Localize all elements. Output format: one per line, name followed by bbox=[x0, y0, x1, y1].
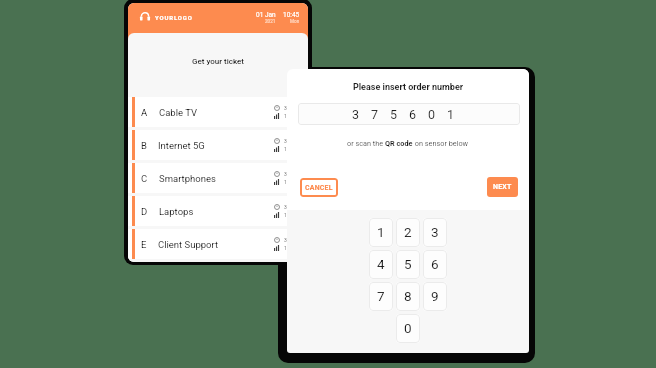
button[interactable]: 3 bbox=[423, 218, 447, 247]
staticText: A bbox=[141, 107, 148, 118]
button[interactable]: 0 bbox=[396, 314, 420, 343]
button[interactable]: E bbox=[128, 229, 308, 259]
staticText: D bbox=[141, 206, 148, 217]
button[interactable]: 9 bbox=[423, 282, 447, 311]
staticText: 4 bbox=[377, 256, 385, 272]
staticText: 5 bbox=[404, 256, 412, 272]
staticText: 1 bbox=[284, 212, 287, 218]
staticText: 3 bbox=[352, 107, 360, 122]
button[interactable]: B bbox=[128, 130, 308, 160]
staticText: 3 bbox=[284, 138, 287, 144]
staticText: 7 bbox=[377, 288, 385, 304]
staticText: 1 bbox=[284, 245, 287, 251]
button[interactable]: C bbox=[128, 163, 308, 193]
staticText: 5 bbox=[390, 107, 398, 122]
staticText: 3 bbox=[284, 204, 287, 210]
staticText: 9 bbox=[431, 288, 439, 304]
button[interactable]: 1 bbox=[369, 218, 393, 247]
staticText: 0 bbox=[404, 320, 412, 336]
staticText: YOURLOGO bbox=[155, 14, 193, 21]
staticText: 10:45 bbox=[283, 11, 300, 19]
staticText: Laptops bbox=[159, 206, 194, 217]
staticText: 3 bbox=[431, 224, 439, 240]
staticText: 3 bbox=[284, 237, 287, 243]
button[interactable]: 8 bbox=[396, 282, 420, 311]
staticText: 1 bbox=[284, 113, 287, 119]
staticText: 6 bbox=[409, 107, 417, 122]
staticText: 3 bbox=[284, 171, 287, 177]
staticText: Mon bbox=[290, 19, 300, 24]
button[interactable]: 2 bbox=[396, 218, 420, 247]
staticText: 1 bbox=[447, 107, 455, 122]
staticText: NEXT bbox=[493, 183, 512, 191]
staticText: 7 bbox=[371, 107, 379, 122]
staticText: B bbox=[141, 140, 147, 151]
staticText: Internet 5G bbox=[158, 140, 205, 151]
staticText: 0 bbox=[428, 107, 436, 122]
staticText: Client Support bbox=[158, 239, 219, 250]
button[interactable]: D bbox=[128, 196, 308, 226]
button[interactable]: 5 bbox=[396, 250, 420, 279]
staticText: 1 bbox=[284, 146, 287, 152]
staticText: 2021 bbox=[265, 19, 276, 24]
staticText: 2 bbox=[404, 224, 412, 240]
button[interactable]: 7 bbox=[369, 282, 393, 311]
staticText: 3 bbox=[284, 105, 287, 111]
button[interactable]: A bbox=[128, 97, 308, 127]
button[interactable]: 6 bbox=[423, 250, 447, 279]
staticText: Cable TV bbox=[159, 107, 197, 118]
staticText: CANCEL bbox=[305, 184, 333, 192]
button[interactable]: NEXT bbox=[487, 177, 518, 197]
staticText: 1 bbox=[377, 224, 385, 240]
button[interactable]: 4 bbox=[369, 250, 393, 279]
staticText: E bbox=[141, 239, 147, 250]
button[interactable]: 3 bbox=[298, 103, 520, 125]
other: Logo bbox=[140, 12, 150, 23]
staticText: Smartphones bbox=[159, 173, 216, 184]
staticText: 01 Jan bbox=[256, 11, 276, 19]
button[interactable]: CANCEL bbox=[300, 178, 338, 197]
staticText: on sensor below bbox=[413, 139, 469, 148]
staticText: 1 bbox=[284, 179, 287, 185]
staticText: QR code bbox=[385, 139, 413, 148]
staticText: Get your ticket bbox=[128, 57, 308, 66]
staticText: 8 bbox=[404, 288, 412, 304]
staticText: or scan the bbox=[347, 139, 385, 148]
staticText: 6 bbox=[431, 256, 439, 272]
staticText: C bbox=[141, 173, 148, 184]
staticText: Please insert order number bbox=[287, 82, 529, 93]
